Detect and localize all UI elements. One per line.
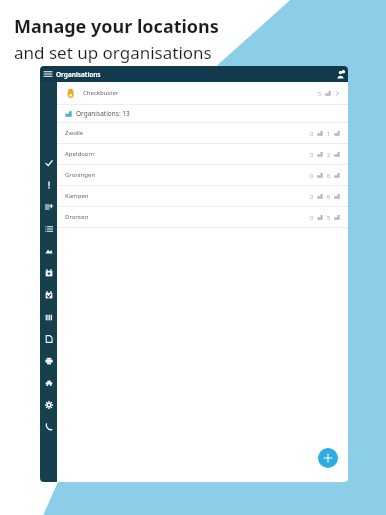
button[interactable]: Call: [40, 418, 57, 435]
staticText: Dronten: [65, 213, 89, 221]
button[interactable]: Library: [40, 308, 57, 325]
staticText: 0: [310, 214, 314, 221]
staticText: Kampen: [65, 192, 89, 200]
button[interactable]: Add schedule: [40, 264, 57, 281]
staticText: 0: [310, 172, 314, 179]
staticText: and set up organisations: [14, 41, 212, 64]
staticText: 0: [310, 130, 314, 137]
staticText: Organisations: 13: [76, 109, 130, 118]
button[interactable]: Add list: [40, 198, 57, 215]
staticText: 1: [327, 130, 331, 137]
button[interactable]: Settings: [40, 396, 57, 413]
button[interactable]: Approved: [40, 154, 57, 171]
staticText: 5: [327, 214, 331, 221]
staticText: Organisations: [56, 70, 101, 79]
button[interactable]: Account: [332, 66, 348, 82]
staticText: Apeldoorn: [65, 150, 95, 158]
button[interactable]: Open navigation menu: [40, 66, 56, 82]
button[interactable]: Kampen: [57, 186, 348, 206]
button[interactable]: Lists: [40, 220, 57, 237]
button[interactable]: Zwolle: [57, 123, 348, 143]
button[interactable]: Groningen: [57, 165, 348, 185]
staticText: 6: [327, 193, 331, 200]
button[interactable]: Reports: [40, 242, 57, 259]
button[interactable]: Checkbuster: [57, 82, 348, 104]
staticText: Checkbuster: [83, 89, 119, 97]
button[interactable]: Schedule: [40, 286, 57, 303]
staticText: 5: [318, 90, 322, 97]
staticText: 0: [310, 151, 314, 158]
button[interactable]: Print: [40, 352, 57, 369]
button[interactable]: Issues: [40, 176, 57, 193]
button[interactable]: Apeldoorn: [57, 144, 348, 164]
staticText: Manage your locations: [14, 14, 219, 39]
button[interactable]: Dronten: [57, 207, 348, 227]
staticText: 0: [310, 193, 314, 200]
staticText: Zwolle: [65, 129, 84, 137]
button[interactable]: Documents: [40, 330, 57, 347]
button[interactable]: Vehicles: [40, 374, 57, 391]
staticText: 6: [327, 172, 331, 179]
staticText: 2: [327, 151, 331, 158]
staticText: Groningen: [65, 171, 96, 179]
button[interactable]: Add organisation: [318, 448, 338, 468]
